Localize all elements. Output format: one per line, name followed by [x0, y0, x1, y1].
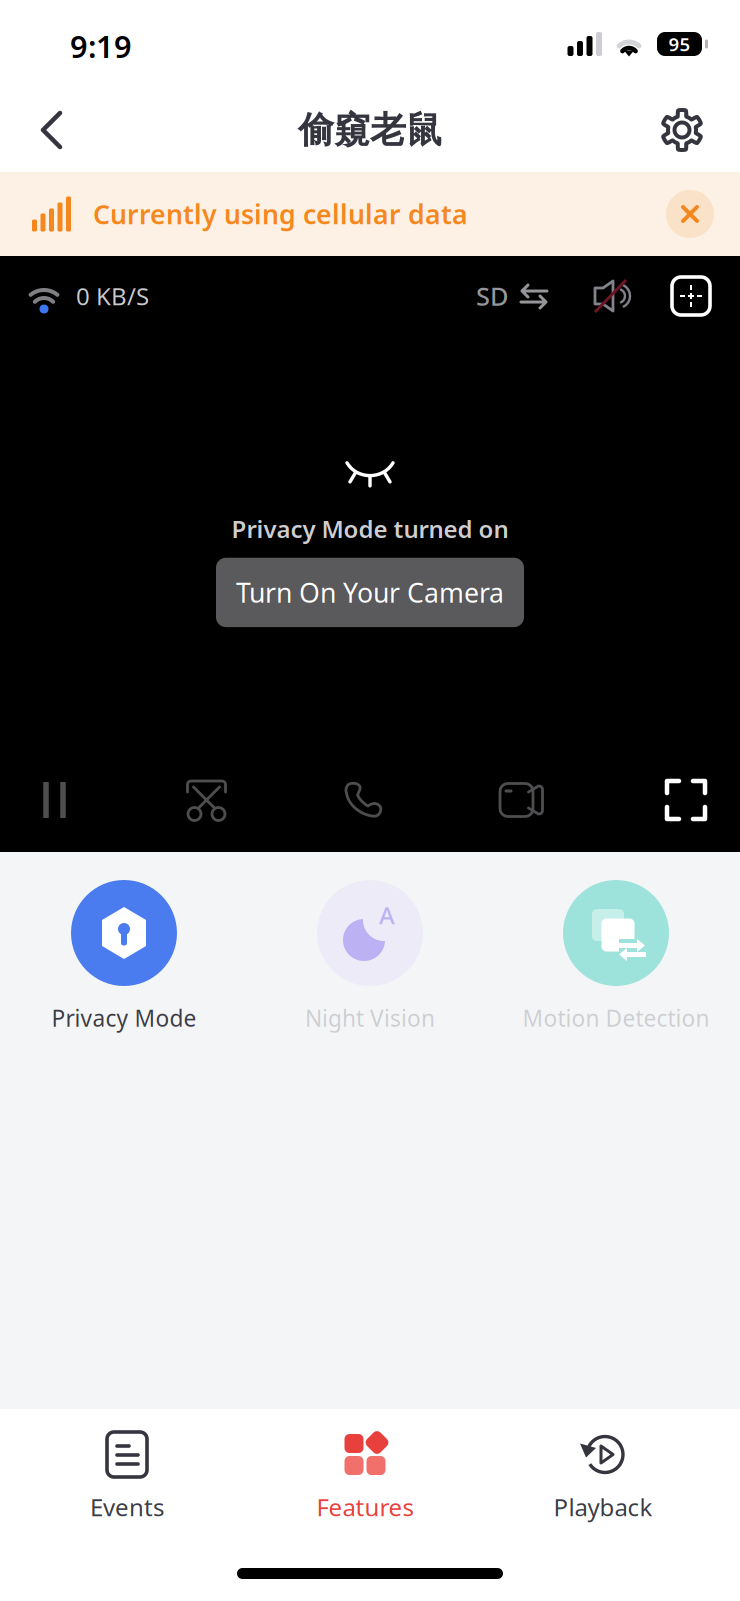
staticText: Privacy Mode: [51, 1003, 196, 1033]
button[interactable]: Playback: [484, 1423, 722, 1531]
button[interactable]: Call: [319, 760, 407, 840]
staticText: Turn On Your Camera: [236, 575, 504, 610]
button[interactable]: Record: [476, 760, 570, 840]
button[interactable]: Dismiss: [654, 178, 740, 250]
button[interactable]: Events: [8, 1423, 246, 1531]
button[interactable]: Settings: [634, 88, 740, 172]
button[interactable]: Motion Detection: [493, 880, 739, 1033]
staticText: Motion Detection: [522, 1003, 709, 1033]
button[interactable]: Fullscreen: [640, 756, 732, 844]
staticText: Playback: [553, 1491, 652, 1523]
staticText: 偷窺老鼠: [298, 108, 442, 152]
button[interactable]: A: [247, 880, 493, 1033]
button[interactable]: Unmute: [560, 269, 656, 323]
staticText: SD: [476, 279, 509, 313]
staticText: 95: [668, 32, 690, 56]
staticText: 0 KB/S: [76, 280, 149, 312]
staticText: Features: [316, 1491, 413, 1523]
button[interactable]: Snapshot: [163, 759, 249, 841]
button[interactable]: Quality: [466, 267, 560, 325]
button[interactable]: Privacy Mode: [1, 880, 247, 1033]
staticText: Events: [90, 1491, 164, 1523]
staticText: Privacy Mode turned on: [231, 513, 508, 545]
staticText: Night Vision: [305, 1003, 435, 1033]
button[interactable]: Features: [246, 1423, 484, 1531]
staticText: A: [379, 899, 395, 931]
button[interactable]: Turn On Your Camera: [216, 558, 524, 627]
staticText: 9:19: [70, 26, 132, 66]
button[interactable]: Back: [0, 89, 94, 171]
button[interactable]: Layout: [656, 269, 740, 323]
staticText: Currently using cellular data: [93, 196, 468, 232]
button[interactable]: Pause: [14, 757, 94, 843]
